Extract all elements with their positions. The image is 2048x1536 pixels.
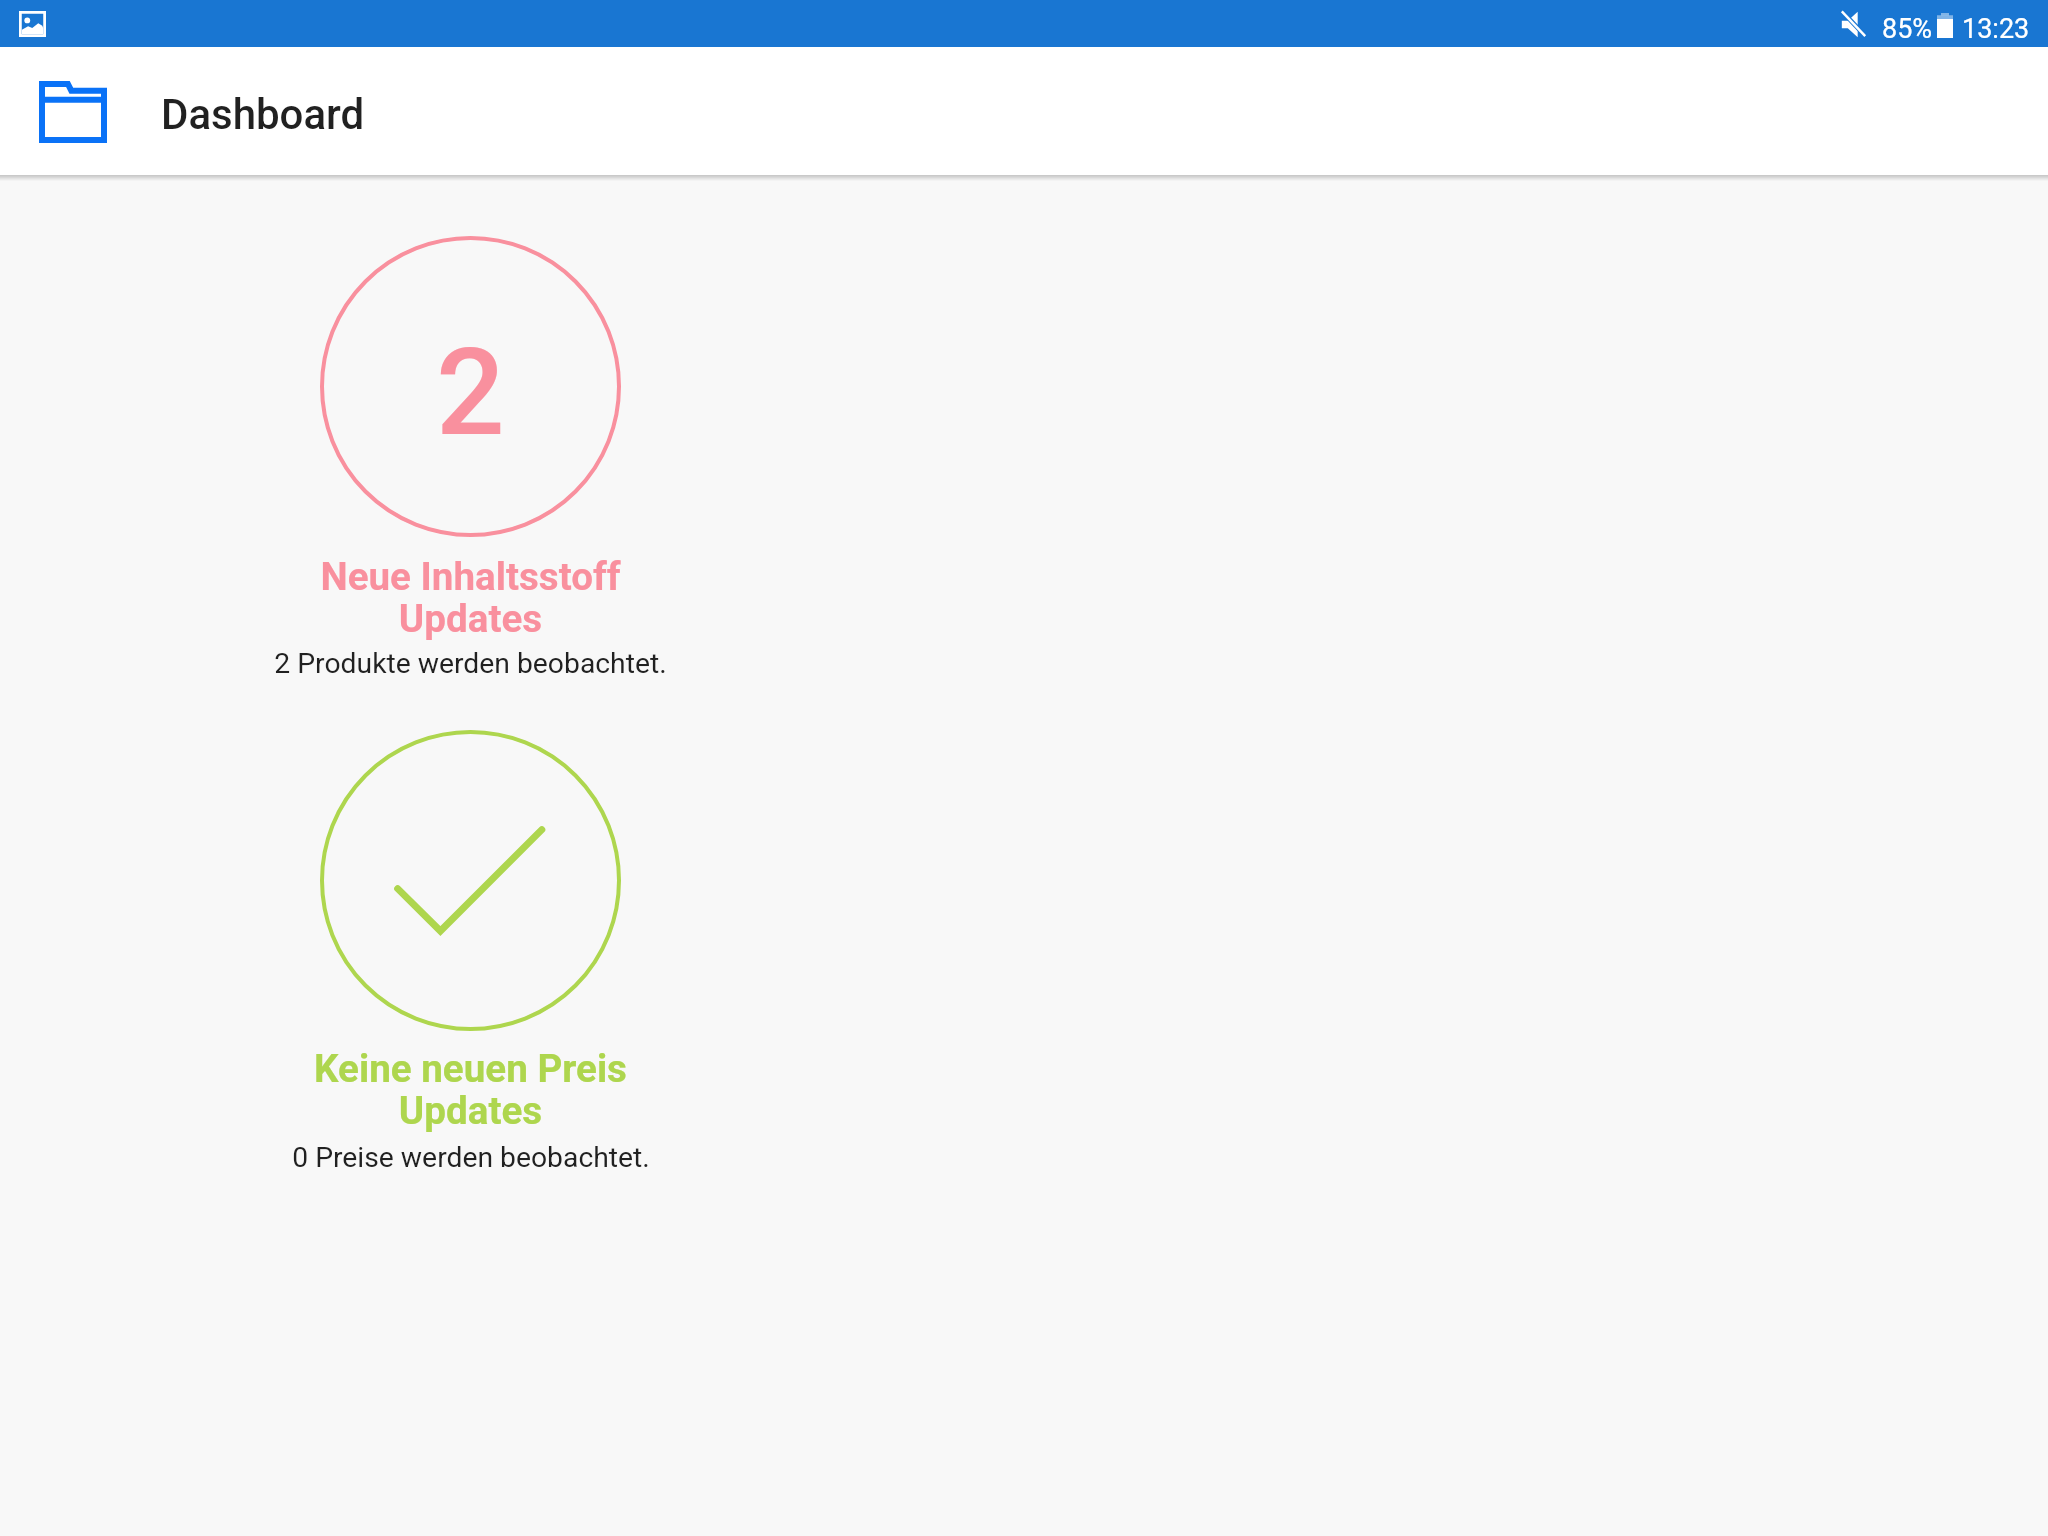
button[interactable]: 2	[0, 236, 941, 680]
staticText: 2 Produkte werden beobachtet.	[274, 647, 667, 680]
staticText: 2	[436, 322, 505, 464]
staticText: 13:23	[1962, 13, 2030, 45]
staticText: Keine neuen Preis Updates	[314, 1046, 627, 1134]
button[interactable]: Keine neuen Preis Updates	[0, 730, 941, 1174]
staticText: 85%	[1882, 13, 1933, 45]
other: Battery 85 percent	[1937, 13, 1953, 38]
other: Sound off	[1840, 10, 1866, 39]
staticText: Dashboard	[161, 90, 365, 139]
other: Screenshot	[19, 11, 46, 37]
button[interactable]: Folder	[39, 81, 107, 143]
staticText: Neue Inhaltsstoff Updates	[320, 554, 621, 642]
staticText: 0 Preise werden beobachtet.	[292, 1141, 650, 1174]
